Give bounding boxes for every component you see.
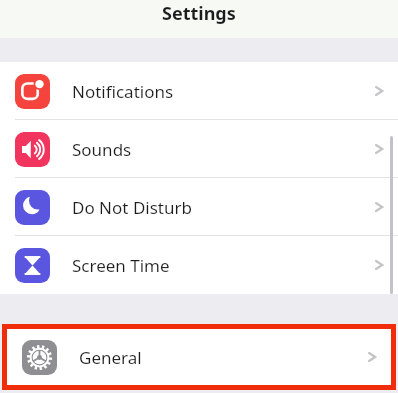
other: Do Not Disturb [15,190,50,225]
other: General [22,340,57,375]
button[interactable]: Do Not Disturb [0,178,398,236]
other: Notifications [15,74,50,109]
staticText: Do Not Disturb [72,196,192,219]
staticText: General [79,346,142,369]
button[interactable]: Sounds [0,120,398,178]
other: Screen Time [15,248,50,283]
staticText: Screen Time [72,254,170,277]
button[interactable]: Notifications [0,62,398,120]
staticText: Sounds [72,138,132,161]
button[interactable]: Screen Time [0,236,398,294]
button[interactable]: General [7,329,391,385]
staticText: Settings [162,1,236,26]
other: Sounds [15,132,50,167]
staticText: Notifications [72,80,174,103]
